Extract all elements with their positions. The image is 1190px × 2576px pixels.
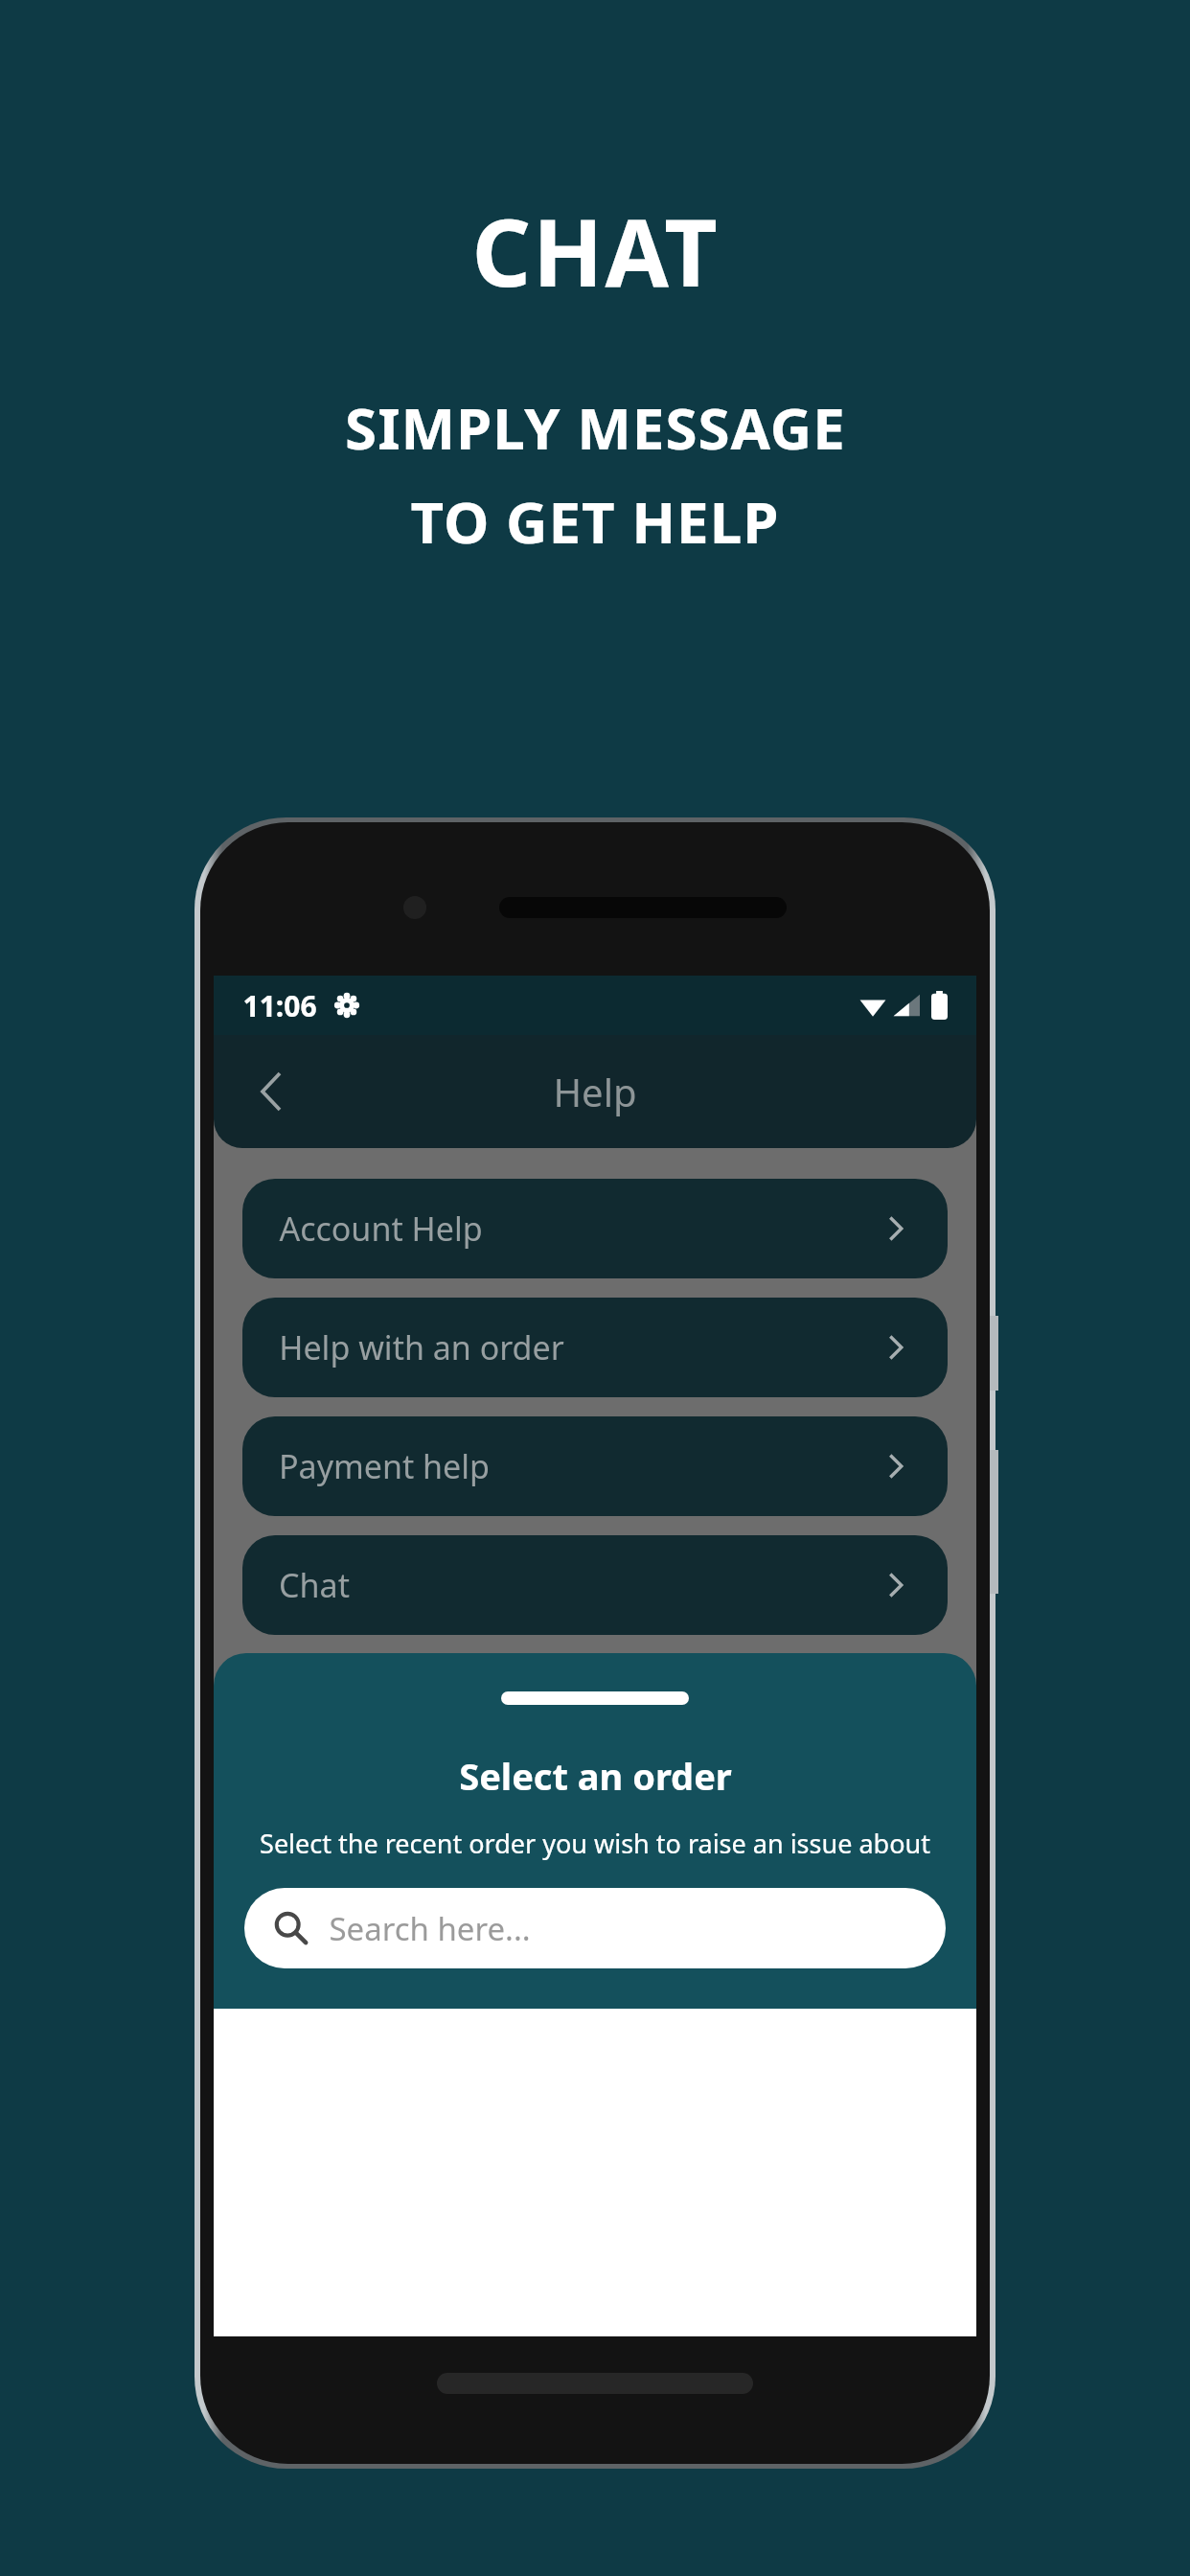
button[interactable]: Payment help xyxy=(242,1416,948,1516)
staticText: Select an order xyxy=(459,1751,732,1801)
button[interactable]: Contact Tiffintom xyxy=(242,1654,948,1754)
button[interactable]: Search here... xyxy=(244,1888,946,1968)
staticText: Report an issue xyxy=(279,1801,516,1845)
staticText: SIMPLY MESSAGE xyxy=(345,388,846,467)
staticText: Select the recent order you wish to rais… xyxy=(260,1826,930,1861)
button[interactable]: Chat xyxy=(242,1535,948,1635)
staticText: Help with an order xyxy=(279,1325,564,1369)
staticText: Help xyxy=(553,1066,637,1117)
button[interactable]: Help with an order xyxy=(242,1298,948,1397)
staticText: CHAT xyxy=(471,188,720,313)
staticText: Contact Tiffintom xyxy=(279,1682,545,1726)
staticText: Account Help xyxy=(279,1207,483,1251)
staticText: Chat xyxy=(279,1563,350,1607)
staticText: 11:06 xyxy=(242,986,317,1025)
staticText: TO GET HELP xyxy=(410,482,780,561)
staticText: Payment help xyxy=(279,1444,490,1488)
staticText: Search here... xyxy=(329,1907,531,1950)
button[interactable]: Report an issue xyxy=(242,1773,948,1873)
button[interactable]: Account Help xyxy=(242,1179,948,1278)
button[interactable]: Back xyxy=(231,1050,313,1133)
